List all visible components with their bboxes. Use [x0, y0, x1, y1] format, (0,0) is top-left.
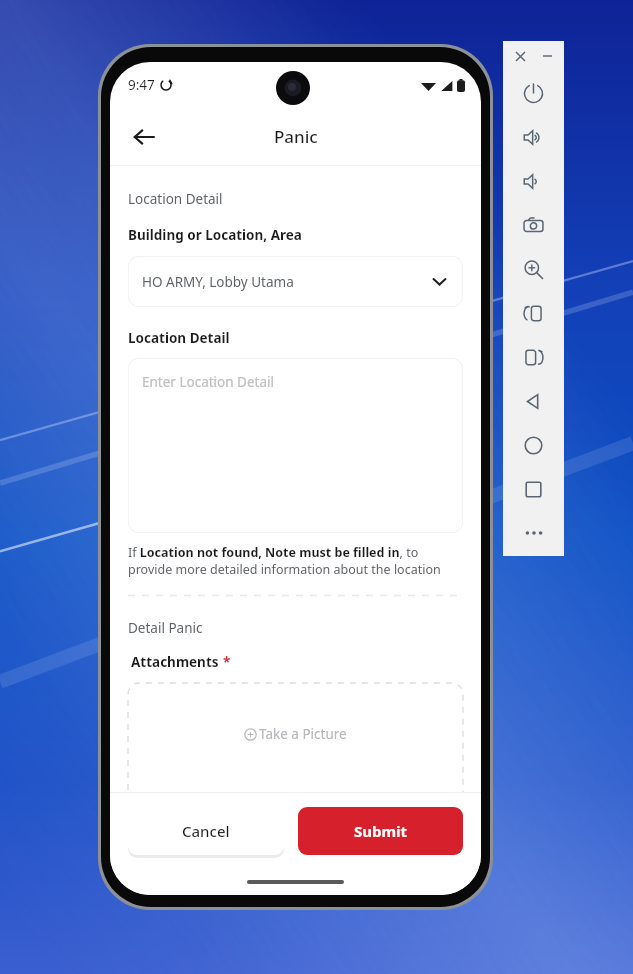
button[interactable]: Enter Location Detail [128, 358, 463, 533]
button[interactable]: Home [503, 423, 564, 467]
staticText: 9:47 [128, 76, 155, 94]
staticText: Panic [274, 125, 318, 148]
staticText: Take a Picture [259, 725, 347, 743]
button[interactable]: Zoom [503, 247, 564, 291]
button[interactable]: Submit [298, 807, 463, 855]
staticText: Attachments [131, 653, 219, 671]
staticText: Location Detail [128, 190, 223, 208]
button[interactable]: HO ARMY, Lobby Utama [128, 256, 463, 307]
button[interactable]: Cancel [128, 807, 284, 855]
staticText: Location Detail [128, 329, 230, 347]
staticText: * [223, 653, 231, 671]
button[interactable]: Overview [503, 467, 564, 511]
button[interactable]: Volume down [503, 159, 564, 203]
button[interactable]: Back [122, 115, 166, 159]
staticText: Enter Location Detail [142, 373, 274, 391]
button[interactable]: More [503, 511, 564, 555]
button[interactable]: Close [510, 46, 530, 66]
button[interactable]: Screenshot [503, 203, 564, 247]
staticText: Cancel [182, 821, 230, 841]
staticText: Submit [354, 821, 408, 841]
button[interactable]: Power [503, 71, 564, 115]
button[interactable]: Rotate right [503, 335, 564, 379]
button[interactable]: Volume up [503, 115, 564, 159]
button[interactable]: Minimize [537, 46, 557, 66]
button[interactable]: Rotate left [503, 291, 564, 335]
staticText: Detail Panic [128, 619, 203, 637]
staticText: HO ARMY, Lobby Utama [142, 273, 294, 291]
staticText: If Location not found, Note must be fill… [128, 544, 463, 578]
staticText: Building or Location, Area [128, 226, 302, 244]
button[interactable]: Take a Picture [128, 683, 463, 813]
button[interactable]: Back [503, 379, 564, 423]
